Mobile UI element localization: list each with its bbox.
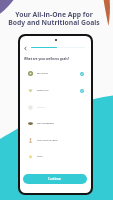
button[interactable]: Weight Loss <box>20 83 91 98</box>
staticText: Eat Healthy <box>37 72 48 75</box>
staticText: Weight Loss <box>37 89 49 92</box>
button[interactable]: Diet Management <box>20 116 91 131</box>
button[interactable]: Continue <box>23 174 87 184</box>
staticText: Continue <box>48 177 62 181</box>
button[interactable]: Learn About My Body <box>20 133 91 148</box>
staticText: Learn About My Body <box>37 139 58 142</box>
staticText: Workout <box>37 106 46 109</box>
staticText: Your All-in-One App for <box>15 10 93 19</box>
button[interactable]: Workout <box>20 100 91 115</box>
button[interactable]: Eat Healthy <box>20 66 91 81</box>
button[interactable]: Other <box>20 149 91 164</box>
staticText: Diet Management <box>37 122 55 125</box>
staticText: Other <box>37 155 43 158</box>
staticText: What are your wellness goals? <box>24 57 70 61</box>
staticText: Body and Nutritional Goals <box>8 18 100 27</box>
button[interactable]: Back <box>23 46 28 51</box>
